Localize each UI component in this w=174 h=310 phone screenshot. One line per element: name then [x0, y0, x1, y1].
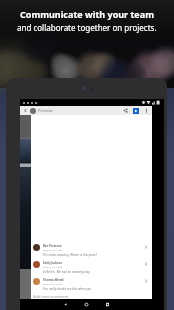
- button[interactable]: Emily Jackson: [33, 259, 152, 276]
- staticText: Thomas Wendt: [43, 278, 64, 282]
- button[interactable]: Share: [123, 108, 128, 113]
- staticText: 2016-10-12 18:06: [43, 265, 63, 268]
- staticText: In Berlin. We had an amazing stay.: [43, 270, 91, 274]
- button[interactable]: Delete: [144, 245, 148, 249]
- button[interactable]: Home: [84, 302, 89, 307]
- staticText: Communicate with your team: [20, 8, 154, 20]
- staticText: This looks amazing. Where is this place?: [43, 253, 97, 257]
- button[interactable]: Play: [133, 108, 139, 114]
- button[interactable]: Delete: [144, 262, 148, 266]
- staticText: and collaborate together on projects.: [17, 22, 157, 33]
- button[interactable]: Add new comment: [33, 293, 152, 299]
- staticText: Emily Jackson: [43, 261, 63, 265]
- button[interactable]: More options: [144, 108, 149, 113]
- button[interactable]: Ben Peterson: [33, 242, 152, 259]
- button[interactable]: Delete: [144, 279, 148, 283]
- staticText: Add new comment: [33, 294, 69, 299]
- button[interactable]: Back: [63, 302, 68, 307]
- button[interactable]: Thomas Wendt: [33, 276, 152, 293]
- staticText: Ben Peterson: [43, 244, 62, 248]
- staticText: 2016-10-12 18:06: [43, 248, 63, 251]
- button[interactable]: Back: [20, 106, 152, 115]
- button[interactable]: Recent apps: [105, 302, 110, 307]
- staticText: You really should see this when you: [43, 287, 92, 291]
- staticText: 2016-10-12 18:06: [43, 282, 63, 285]
- button[interactable]: Back: [23, 108, 28, 113]
- staticText: Preview: [38, 108, 53, 113]
